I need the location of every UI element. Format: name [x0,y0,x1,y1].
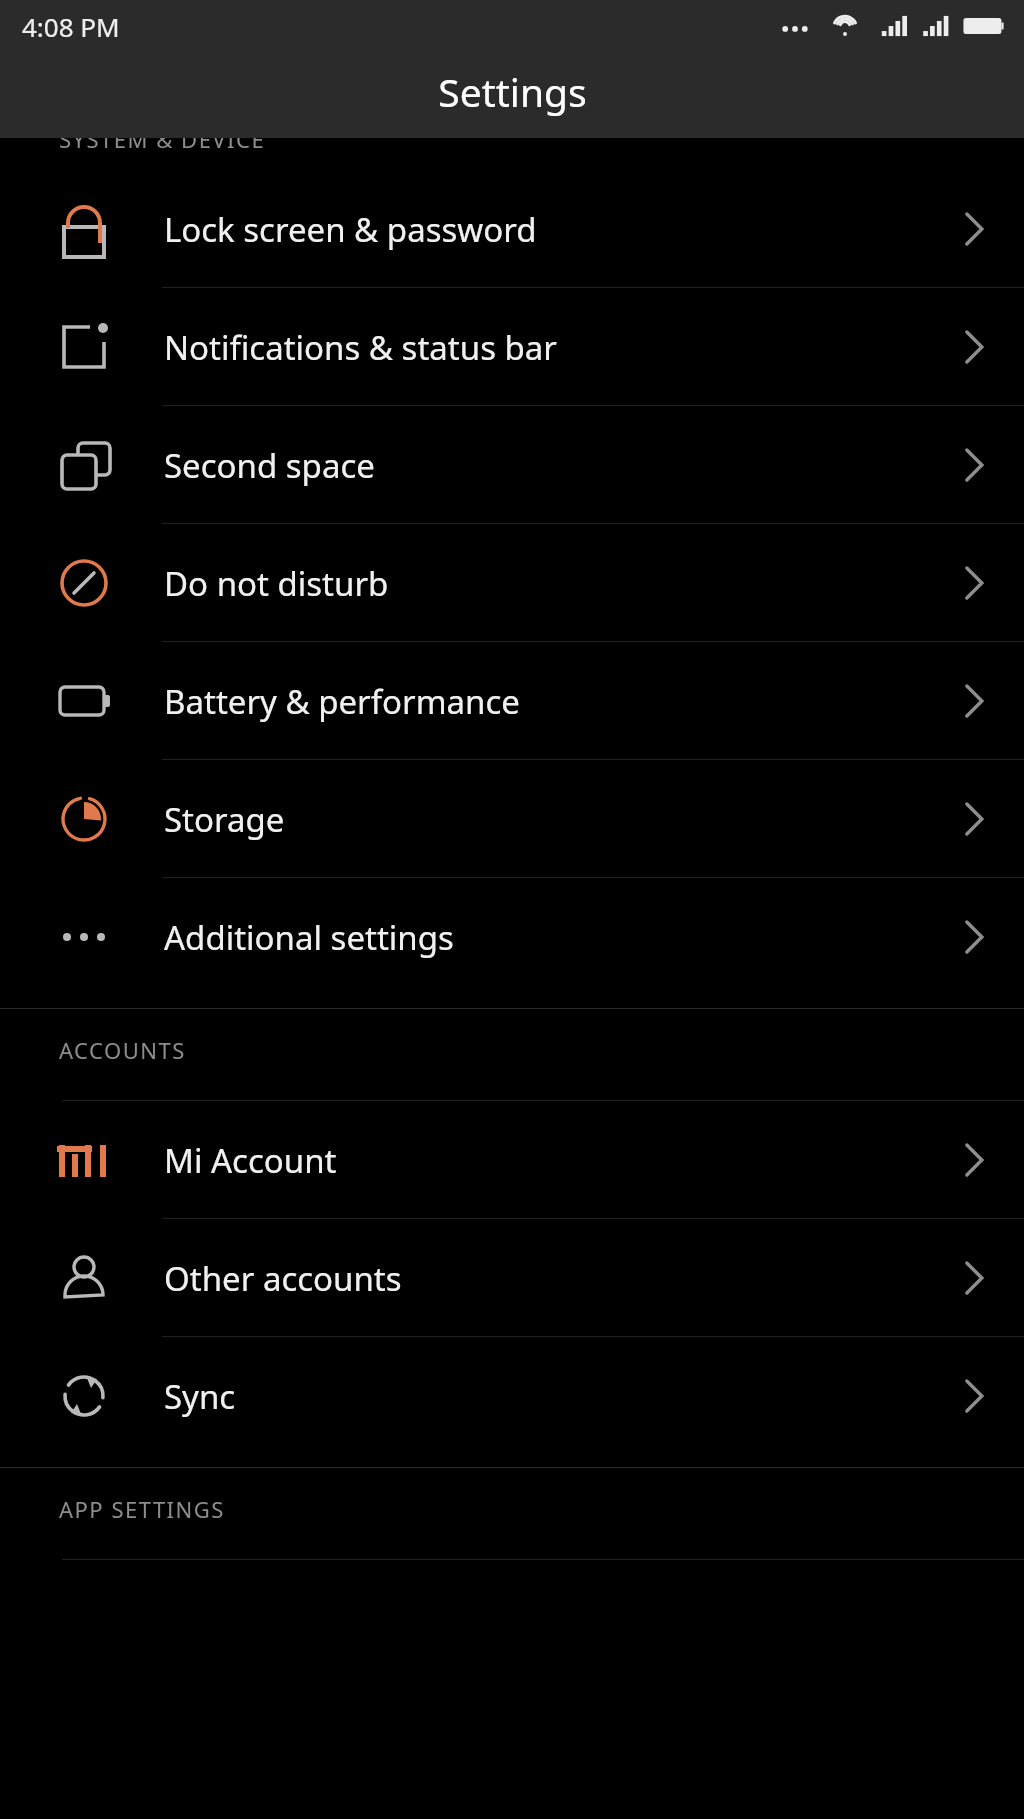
staticText: ACCOUNTS [59,1035,186,1065]
button[interactable]: Additional settings [0,878,1024,996]
staticText: Settings [438,65,587,118]
button[interactable]: Other accounts [0,1219,1024,1337]
staticText: Additional settings [164,915,934,960]
staticText: Second space [164,443,934,488]
staticText: Mi Account [164,1138,934,1183]
staticText: Storage [164,797,934,842]
staticText: Battery & performance [164,679,934,724]
button[interactable]: Sync [0,1337,1024,1455]
button[interactable]: Lock screen & password [0,170,1024,288]
button[interactable]: Storage [0,760,1024,878]
button[interactable]: Do not disturb [0,524,1024,642]
staticText: Notifications & status bar [164,325,934,370]
staticText: SYSTEM & DEVICE [59,124,266,154]
staticText: Other accounts [164,1256,934,1301]
button[interactable]: Battery & performance [0,642,1024,760]
button[interactable]: Second space [0,406,1024,524]
staticText: Do not disturb [164,561,934,606]
staticText: 4:08 PM [22,9,120,44]
staticText: APP SETTINGS [59,1494,225,1524]
staticText: Sync [164,1374,934,1419]
button[interactable]: Mi Account [0,1101,1024,1219]
button[interactable]: Notifications & status bar [0,288,1024,406]
staticText: Lock screen & password [164,207,934,252]
